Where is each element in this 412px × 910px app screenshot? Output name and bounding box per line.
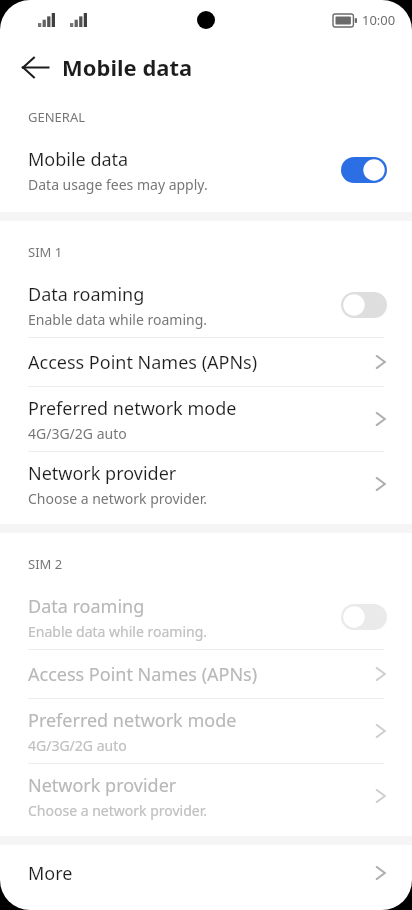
staticText: Choose a network provider. (28, 801, 207, 820)
staticText: Choose a network provider. (28, 489, 207, 508)
button[interactable]: Access Point Names (APNs) (0, 650, 412, 698)
staticText: Data roaming (28, 282, 145, 307)
button[interactable]: Preferred network mode (0, 699, 412, 763)
button[interactable]: Data roaming (0, 273, 412, 337)
button[interactable]: More (0, 845, 412, 901)
staticText: SIM 1 (28, 243, 63, 261)
button[interactable]: Back (14, 46, 56, 88)
staticText: Network provider (28, 461, 177, 486)
button[interactable]: Toggle (341, 292, 387, 318)
staticText: 10:00 (362, 11, 396, 29)
staticText: Enable data while roaming. (28, 310, 208, 329)
staticText: Data roaming (28, 594, 145, 619)
button[interactable]: Network provider (0, 764, 412, 828)
staticText: Mobile data (62, 52, 193, 82)
staticText: GENERAL (28, 108, 86, 126)
staticText: Access Point Names (APNs) (28, 350, 258, 375)
button[interactable]: Data roaming (0, 585, 412, 649)
staticText: Preferred network mode (28, 708, 237, 733)
staticText: More (28, 861, 73, 886)
staticText: Network provider (28, 773, 177, 798)
button[interactable]: Toggle (341, 604, 387, 630)
staticText: Mobile data (28, 147, 129, 172)
staticText: Preferred network mode (28, 396, 237, 421)
staticText: 4G/3G/2G auto (28, 736, 127, 755)
button[interactable]: Network provider (0, 452, 412, 516)
button[interactable]: Mobile data (0, 138, 412, 202)
button[interactable]: Access Point Names (APNs) (0, 338, 412, 386)
staticText: Data usage fees may apply. (28, 175, 208, 194)
button[interactable]: Preferred network mode (0, 387, 412, 451)
staticText: Access Point Names (APNs) (28, 662, 258, 687)
staticText: Enable data while roaming. (28, 622, 208, 641)
staticText: SIM 2 (28, 555, 63, 573)
staticText: 4G/3G/2G auto (28, 424, 127, 443)
button[interactable]: Toggle (341, 157, 387, 183)
